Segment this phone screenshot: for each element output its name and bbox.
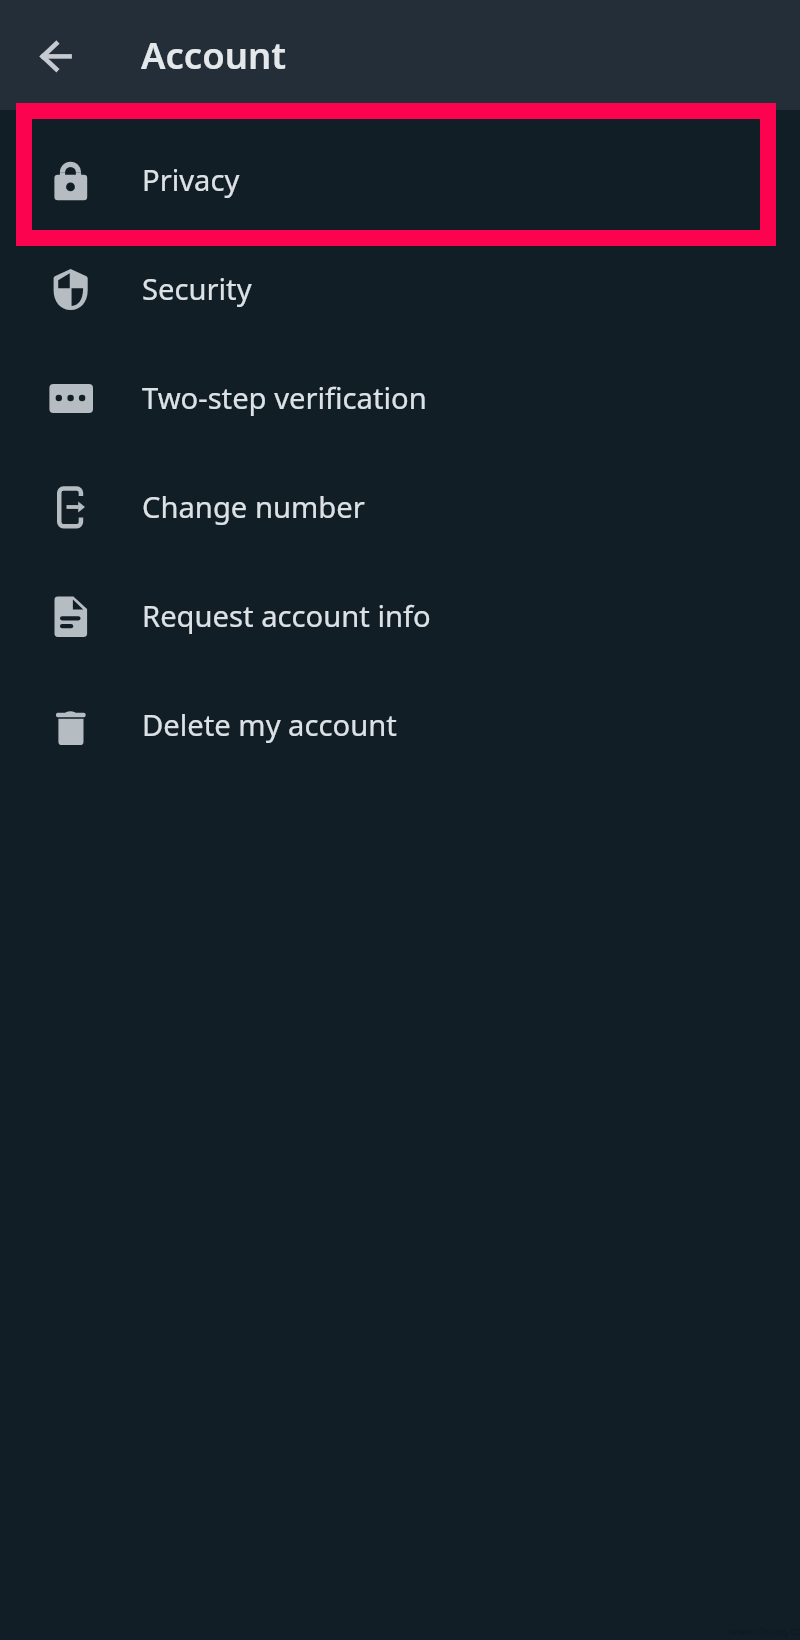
button[interactable]: Request account info bbox=[0, 561, 800, 670]
staticText: Request account info bbox=[142, 596, 431, 636]
button[interactable]: Delete my account bbox=[0, 670, 800, 779]
button[interactable]: Back bbox=[0, 0, 110, 110]
button[interactable]: Privacy bbox=[0, 125, 800, 234]
staticText: Two-step verification bbox=[142, 378, 427, 418]
staticText: Change number bbox=[142, 487, 365, 527]
button[interactable]: Security bbox=[0, 234, 800, 343]
staticText: Account bbox=[141, 30, 287, 80]
staticText: Security bbox=[142, 269, 252, 309]
button[interactable]: Change number bbox=[0, 452, 800, 561]
staticText: Delete my account bbox=[142, 705, 397, 745]
staticText: Privacy bbox=[142, 160, 240, 200]
button[interactable]: Two-step verification bbox=[0, 343, 800, 452]
